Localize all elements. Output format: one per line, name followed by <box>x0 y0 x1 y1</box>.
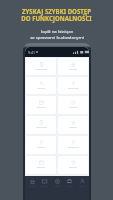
button[interactable]: Add <box>52 176 63 192</box>
staticText: ZYSKAJ SZYBKI DOSTĘP DO FUNKCJONALNOŚCI <box>21 7 92 23</box>
button[interactable] <box>26 58 56 75</box>
button[interactable]: Notifications <box>64 176 75 192</box>
button[interactable] <box>26 77 56 94</box>
button[interactable] <box>58 96 88 114</box>
button[interactable] <box>26 96 56 114</box>
button[interactable]: Profile <box>77 176 88 192</box>
button[interactable] <box>58 77 88 94</box>
button[interactable] <box>26 116 56 134</box>
button[interactable]: Messages <box>39 176 50 192</box>
staticText: bądź na bieżąco ze sprawami budowlanymi <box>30 28 84 40</box>
button[interactable] <box>26 136 56 154</box>
button[interactable] <box>58 116 88 134</box>
button[interactable] <box>58 136 88 154</box>
button[interactable] <box>58 58 88 75</box>
staticText: 9:41 <box>28 50 35 55</box>
button[interactable] <box>58 156 88 174</box>
button[interactable]: Home <box>27 176 38 192</box>
button[interactable] <box>26 156 56 174</box>
